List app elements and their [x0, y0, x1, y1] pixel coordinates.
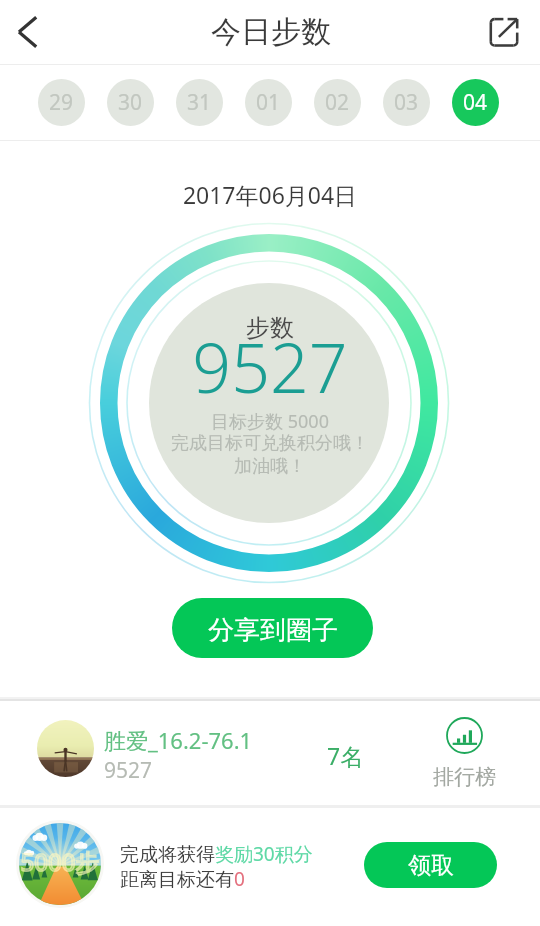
- staticText: 步数: [0, 313, 540, 343]
- button[interactable]: 04: [452, 79, 499, 126]
- staticText: 分享到圈子: [208, 614, 338, 647]
- staticText: 01: [256, 88, 281, 117]
- staticText: 9527: [104, 756, 153, 785]
- staticText: 完成将获得奖励30积分: [120, 841, 313, 867]
- staticText: 9527: [0, 320, 540, 413]
- staticText: 胜爱_16.2-76.1: [104, 725, 253, 755]
- staticText: 今日步数: [211, 13, 331, 51]
- button[interactable]: 排行榜: [425, 717, 503, 790]
- button[interactable]: 02: [314, 79, 361, 126]
- staticText: 目标步数 5000: [0, 409, 540, 434]
- button[interactable]: 胜爱_16.2-76.1: [0, 702, 540, 805]
- button[interactable]: 30: [107, 79, 154, 126]
- staticText: 2017年06月04日: [0, 179, 540, 210]
- button[interactable]: Back: [0, 4, 54, 60]
- staticText: 完成目标可兑换积分哦！: [0, 432, 540, 455]
- staticText: 排行榜: [433, 764, 496, 790]
- staticText: 02: [325, 88, 350, 117]
- button[interactable]: 31: [176, 79, 223, 126]
- button[interactable]: 29: [38, 79, 85, 126]
- staticText: 03: [394, 88, 419, 117]
- button[interactable]: 03: [383, 79, 430, 126]
- staticText: 29: [49, 88, 74, 117]
- staticText: 加油哦！: [0, 455, 540, 478]
- staticText: 领取: [408, 851, 454, 880]
- button[interactable]: 分享到圈子: [172, 598, 373, 658]
- button[interactable]: Share: [480, 8, 528, 56]
- staticText: 30: [118, 88, 143, 117]
- staticText: 距离目标还有0: [120, 866, 245, 892]
- button[interactable]: 领取: [364, 842, 497, 888]
- button[interactable]: 01: [245, 79, 292, 126]
- staticText: 04: [463, 88, 488, 117]
- staticText: 31: [187, 88, 212, 117]
- staticText: 5000步: [19, 845, 101, 878]
- staticText: 7名: [327, 740, 364, 771]
